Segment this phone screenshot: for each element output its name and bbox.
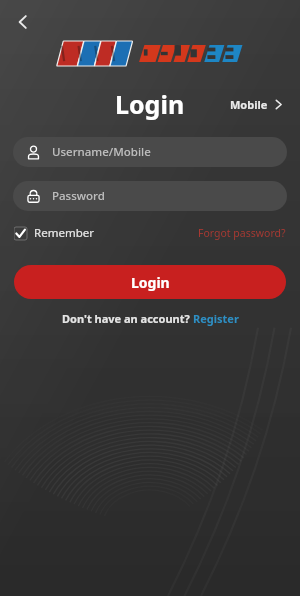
button[interactable]: Register [193,311,239,326]
staticText: Password [52,188,105,204]
staticText: Forgot password? [198,226,286,240]
staticText: Login [131,273,170,292]
button[interactable]: Back [8,7,38,37]
staticText: Remember [34,225,94,241]
button[interactable]: Remember [14,223,94,243]
staticText: Mobile [230,97,268,112]
button[interactable]: Login [14,265,286,299]
staticText: Username/Mobile [52,144,151,160]
button[interactable]: Forgot password? [198,224,286,242]
button[interactable]: Password [13,181,287,211]
button[interactable]: Username/Mobile [13,137,287,167]
staticText: Login [115,87,185,121]
staticText: Don't have an account? [62,311,193,326]
staticText: Register [193,311,239,326]
button[interactable]: Mobile [228,92,286,117]
